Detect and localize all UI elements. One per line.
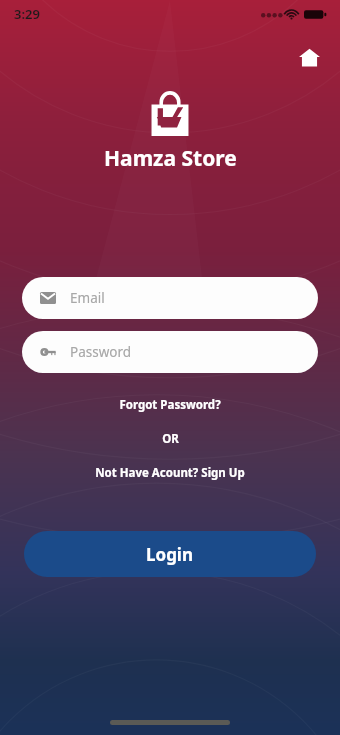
- button[interactable]: Login: [24, 531, 316, 577]
- button[interactable]: OR: [152, 429, 189, 449]
- staticText: 3:29: [14, 5, 40, 23]
- button[interactable]: Not Have Acount? Sign Up: [85, 463, 255, 483]
- staticText: Login: [146, 543, 194, 566]
- button[interactable]: Forgot Password?: [109, 395, 231, 415]
- staticText: Hamza Store: [104, 144, 237, 173]
- button[interactable]: Email: [22, 277, 318, 319]
- button[interactable]: Home: [292, 40, 326, 74]
- staticText: Not Have Acount? Sign Up: [95, 465, 245, 481]
- staticText: Forgot Password?: [119, 397, 221, 413]
- button[interactable]: Password: [22, 331, 318, 373]
- staticText: OR: [162, 431, 179, 447]
- staticText: Email: [70, 289, 105, 307]
- staticText: Password: [70, 343, 132, 361]
